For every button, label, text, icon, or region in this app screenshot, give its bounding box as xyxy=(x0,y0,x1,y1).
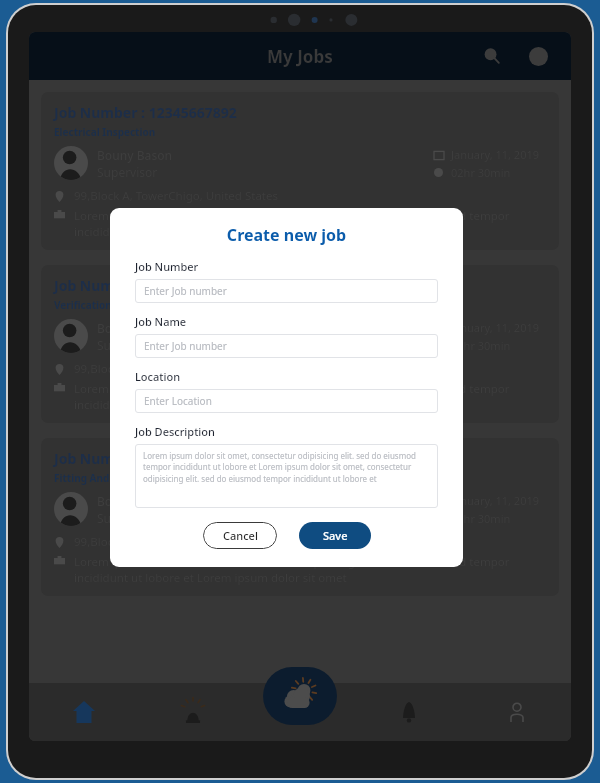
button[interactable]: Job Number : 12345667892 xyxy=(41,92,559,250)
staticText: Job Number : 12345667892 xyxy=(54,449,237,468)
button[interactable]: Job Number : 12345667892 xyxy=(41,438,559,596)
staticText: January, 11, 2019 xyxy=(451,493,540,508)
staticText: Bouny Bason xyxy=(97,493,173,509)
staticText: Bouny Bason xyxy=(97,147,173,163)
staticText: Fitting And Repair xyxy=(54,471,145,485)
button[interactable]: Enter Job number xyxy=(135,334,438,358)
staticText: Create new job xyxy=(135,224,438,246)
staticText: 02hr 30min xyxy=(451,511,511,526)
staticText: 99,Block A, TowerChigo, United States xyxy=(74,534,278,550)
staticText: Job Description xyxy=(135,424,215,439)
button[interactable]: Home xyxy=(29,683,138,741)
staticText: Enter Job number xyxy=(144,284,227,298)
button[interactable]: Enter Location xyxy=(135,389,438,413)
staticText: Job Number : 12345667892 xyxy=(54,103,237,122)
staticText: Job Name xyxy=(135,314,187,329)
staticText: Enter Location xyxy=(144,394,212,408)
staticText: Lorem ipsum dolor sit omet, consectetur … xyxy=(74,381,546,412)
button[interactable]: Enter Job number xyxy=(135,279,438,303)
button[interactable]: Weather xyxy=(263,667,337,725)
staticText: Lorem ipsum dolor sit omet, consectetur … xyxy=(143,450,430,485)
staticText: Electrical Inspection xyxy=(54,125,156,139)
button[interactable]: Profile xyxy=(523,41,553,71)
button[interactable]: Save xyxy=(299,522,371,549)
staticText: Supervisor xyxy=(97,510,158,526)
button[interactable]: Account xyxy=(463,683,571,741)
staticText: January, 11, 2019 xyxy=(451,320,540,335)
button[interactable]: Lorem ipsum dolor sit omet, consectetur … xyxy=(135,444,438,508)
button[interactable]: Job Number : 12345667892 xyxy=(41,265,559,423)
staticText: 99,Block A, TowerChigo, United States xyxy=(74,361,278,377)
staticText: Verification Works xyxy=(54,298,146,312)
button[interactable]: Cancel xyxy=(203,522,277,549)
staticText: Cancel xyxy=(223,528,258,543)
staticText: Lorem ipsum dolor sit omet, consectetur … xyxy=(74,208,546,239)
staticText: Bouny Bason xyxy=(97,320,173,336)
staticText: My Jobs xyxy=(267,45,333,68)
staticText: Save xyxy=(323,528,348,543)
staticText: Lorem ipsum dolor sit omet, consectetur … xyxy=(74,554,546,585)
staticText: Job Number xyxy=(135,259,199,274)
staticText: 02hr 30min xyxy=(451,338,511,353)
staticText: Enter Job number xyxy=(144,339,227,353)
staticText: Supervisor xyxy=(97,337,158,353)
button[interactable]: Search xyxy=(477,41,507,71)
staticText: Location xyxy=(135,369,181,384)
staticText: Job Number : 12345667892 xyxy=(54,276,237,295)
